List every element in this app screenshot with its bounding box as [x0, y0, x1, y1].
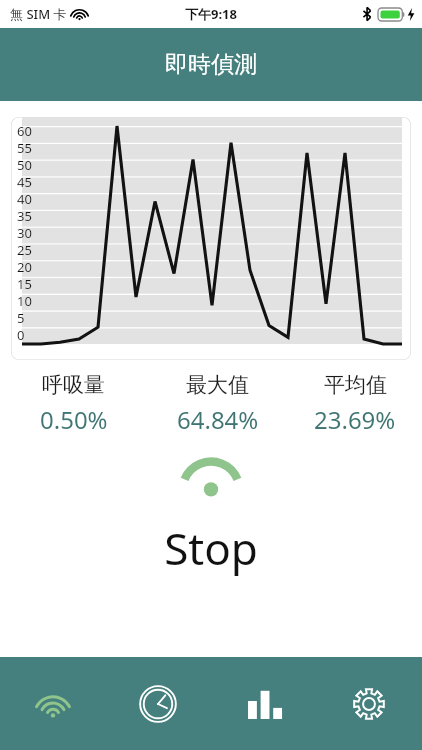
- staticText: 即時偵測: [165, 50, 257, 79]
- button[interactable]: Live detection: [0, 657, 105, 750]
- staticText: 5: [17, 309, 25, 326]
- staticText: 0.50%: [40, 403, 108, 436]
- staticText: 無 SIM 卡: [10, 5, 67, 23]
- staticText: 平均值: [324, 372, 387, 398]
- staticText: 45: [17, 173, 32, 190]
- staticText: 35: [17, 207, 32, 224]
- staticText: 40: [17, 190, 32, 207]
- button[interactable]: Settings: [316, 657, 422, 750]
- staticText: 最大值: [186, 372, 249, 398]
- staticText: 15: [17, 275, 32, 292]
- button[interactable]: Statistics: [210, 657, 316, 750]
- staticText: 60: [17, 122, 32, 139]
- button[interactable]: History: [105, 657, 210, 750]
- staticText: 64.84%: [177, 403, 259, 436]
- staticText: 下午9:18: [185, 5, 237, 23]
- staticText: Stop: [0, 518, 422, 578]
- staticText: 30: [17, 224, 32, 241]
- staticText: 呼吸量: [42, 372, 105, 398]
- other: Signal strength: [180, 454, 242, 496]
- staticText: 50: [17, 156, 32, 173]
- staticText: 0: [17, 326, 25, 343]
- staticText: 25: [17, 241, 32, 258]
- staticText: 10: [17, 292, 32, 309]
- staticText: 20: [17, 258, 32, 275]
- staticText: 23.69%: [314, 403, 396, 436]
- staticText: 55: [17, 139, 32, 156]
